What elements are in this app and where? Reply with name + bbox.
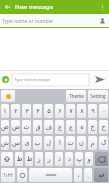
- button[interactable]: [29, 168, 72, 182]
- button[interactable]: ظ: [15, 152, 23, 166]
- staticText: .: [87, 171, 89, 180]
- staticText: ی: [24, 139, 30, 147]
- staticText: ذ: [58, 155, 61, 163]
- button[interactable]: د: [65, 152, 73, 166]
- button[interactable]: ط: [25, 152, 33, 166]
- button[interactable]: [94, 168, 108, 182]
- button[interactable]: ۲: [11, 104, 20, 118]
- staticText: ف: [45, 123, 52, 131]
- button[interactable]: ۸: [77, 104, 86, 118]
- button[interactable]: پ: [75, 152, 83, 166]
- button[interactable]: ۳: [22, 104, 31, 118]
- button[interactable]: ۶: [55, 104, 64, 118]
- button[interactable]: ک: [99, 136, 108, 150]
- button[interactable]: ق: [33, 120, 42, 134]
- staticText: م: [90, 139, 95, 147]
- button[interactable]: Send: [90, 70, 109, 89]
- button[interactable]: ح: [99, 120, 108, 134]
- button[interactable]: ۰: [99, 104, 108, 118]
- staticText: ش: [1, 139, 9, 147]
- button[interactable]: ص: [11, 120, 20, 134]
- staticText: ?۱۲۳: [3, 172, 13, 178]
- staticText: ۶: [58, 107, 62, 115]
- staticText: ض: [1, 123, 9, 131]
- staticText: ۰: [102, 107, 106, 115]
- button[interactable]: ?۱۲۳: [1, 168, 15, 182]
- button[interactable]: .: [84, 168, 92, 182]
- button[interactable]: ن: [77, 136, 86, 150]
- staticText: ه: [80, 123, 84, 131]
- button[interactable]: ت: [66, 136, 75, 150]
- button[interactable]: ۱: [1, 104, 9, 118]
- button[interactable]: ف: [44, 120, 53, 134]
- button[interactable]: ر: [45, 152, 53, 166]
- button[interactable]: [1, 152, 13, 166]
- button[interactable]: و: [85, 152, 93, 166]
- button[interactable]: Back: [0, 0, 14, 14]
- staticText: غ: [58, 123, 62, 131]
- button[interactable]: ۷: [66, 104, 75, 118]
- staticText: ح: [101, 123, 106, 131]
- staticText: ۷: [69, 107, 73, 115]
- staticText: Type text message: [14, 77, 50, 83]
- staticText: خ: [90, 123, 95, 131]
- staticText: ز: [37, 155, 41, 163]
- staticText: س: [12, 139, 20, 147]
- button[interactable]: ش: [1, 136, 9, 150]
- button[interactable]: ،: [74, 168, 82, 182]
- staticText: ک: [101, 139, 107, 147]
- staticText: Theme: [69, 93, 84, 99]
- staticText: و: [87, 155, 91, 163]
- staticText: ،: [77, 171, 80, 179]
- button[interactable]: م: [88, 136, 97, 150]
- button[interactable]: ه: [77, 120, 86, 134]
- staticText: ث: [23, 123, 30, 131]
- button[interactable]: خ: [88, 120, 97, 134]
- staticText: ص: [12, 123, 20, 131]
- staticText: ع: [69, 123, 73, 131]
- button[interactable]: Type text message: [12, 74, 89, 86]
- button[interactable]: Add recipient: [95, 14, 109, 28]
- button[interactable]: ا: [55, 136, 64, 150]
- button[interactable]: ث: [22, 120, 31, 134]
- staticText: ۹: [91, 107, 95, 115]
- button[interactable]: س: [11, 136, 20, 150]
- staticText: د: [68, 155, 71, 163]
- button[interactable]: ز: [35, 152, 43, 166]
- staticText: ر: [47, 155, 51, 163]
- staticText: ۴: [36, 107, 40, 115]
- button[interactable]: Theme: [66, 90, 86, 102]
- staticText: ۲: [14, 107, 18, 115]
- button[interactable]: ع: [66, 120, 75, 134]
- staticText: ظ: [16, 155, 23, 163]
- button[interactable]: ی: [22, 136, 31, 150]
- button[interactable]: Add attachment: [2, 76, 9, 83]
- staticText: ا: [59, 139, 61, 147]
- button[interactable]: ۴: [33, 104, 42, 118]
- staticText: Type name or number: [2, 18, 54, 25]
- staticText: پ: [76, 155, 83, 163]
- staticText: ت: [67, 139, 74, 147]
- staticText: ۵: [47, 107, 51, 115]
- button[interactable]: More options: [95, 0, 109, 14]
- button[interactable]: Setting: [88, 90, 108, 102]
- button[interactable]: ۹: [88, 104, 97, 118]
- button[interactable]: ل: [44, 136, 53, 150]
- staticText: ۳: [25, 107, 29, 115]
- staticText: ن: [79, 139, 84, 147]
- staticText: ق: [35, 123, 41, 131]
- button[interactable]: [95, 152, 108, 166]
- staticText: ۱: [3, 107, 7, 115]
- button[interactable]: [17, 168, 27, 182]
- staticText: Setting: [90, 93, 106, 99]
- button[interactable]: ذ: [55, 152, 63, 166]
- button[interactable]: [1, 90, 15, 102]
- staticText: ط: [26, 155, 33, 163]
- staticText: ل: [46, 139, 51, 147]
- button[interactable]: غ: [55, 120, 64, 134]
- button[interactable]: ۵: [44, 104, 53, 118]
- button[interactable]: ض: [1, 120, 9, 134]
- button[interactable]: ب: [33, 136, 42, 150]
- staticText: ۸: [80, 107, 84, 115]
- staticText: New message: [15, 3, 53, 11]
